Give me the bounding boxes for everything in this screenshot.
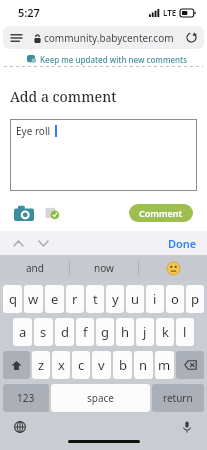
button[interactable]: n bbox=[134, 351, 153, 379]
button[interactable] bbox=[139, 255, 207, 281]
staticText: t bbox=[93, 290, 98, 308]
button[interactable]: s bbox=[34, 318, 53, 346]
button[interactable]: Shift bbox=[3, 351, 30, 379]
button[interactable]: x bbox=[52, 351, 70, 379]
staticText: c bbox=[78, 356, 85, 374]
button[interactable]: Comment bbox=[129, 204, 193, 222]
button[interactable]: e bbox=[45, 285, 64, 313]
button[interactable]: Change keyboard bbox=[11, 418, 29, 436]
button[interactable]: Attach file bbox=[44, 205, 60, 221]
staticText: g bbox=[101, 323, 109, 341]
button[interactable]: Dictate bbox=[178, 418, 196, 436]
button[interactable]: z bbox=[32, 351, 50, 379]
button[interactable]: c bbox=[72, 351, 90, 379]
button[interactable]: a bbox=[13, 318, 32, 346]
button[interactable]: w bbox=[24, 285, 43, 313]
staticText: f bbox=[83, 323, 88, 341]
staticText: e bbox=[51, 290, 59, 308]
button[interactable]: Menu bbox=[3, 26, 29, 49]
staticText: a bbox=[19, 323, 27, 341]
staticText: now bbox=[94, 261, 114, 275]
button[interactable]: return bbox=[152, 384, 204, 412]
staticText: and bbox=[26, 261, 44, 275]
staticText: 5:27 bbox=[18, 5, 40, 20]
staticText: y bbox=[112, 290, 119, 308]
staticText: u bbox=[131, 290, 140, 308]
button[interactable]: y bbox=[106, 285, 124, 313]
button[interactable]: Backspace bbox=[176, 351, 204, 379]
staticText: return bbox=[163, 391, 193, 405]
button[interactable]: h bbox=[116, 318, 134, 346]
button[interactable]: l bbox=[176, 318, 194, 346]
staticText: k bbox=[162, 323, 169, 341]
staticText: 123 bbox=[17, 391, 35, 405]
button[interactable]: 123 bbox=[3, 384, 49, 412]
staticText: r bbox=[72, 290, 78, 308]
button[interactable]: r bbox=[66, 285, 84, 313]
staticText: Done bbox=[168, 236, 197, 251]
staticText: p bbox=[191, 290, 199, 308]
button[interactable]: m bbox=[155, 351, 174, 379]
button[interactable]: and bbox=[0, 255, 69, 281]
staticText: j bbox=[143, 323, 147, 341]
staticText: w bbox=[28, 290, 39, 308]
staticText: q bbox=[9, 290, 17, 308]
staticText: z bbox=[38, 356, 45, 374]
button[interactable]: Reload bbox=[178, 26, 204, 49]
button[interactable]: d bbox=[55, 318, 74, 346]
staticText: l bbox=[183, 323, 187, 341]
staticText: h bbox=[121, 323, 130, 341]
button[interactable]: Eye roll bbox=[10, 119, 197, 191]
button[interactable]: space bbox=[51, 384, 150, 412]
button[interactable]: f bbox=[76, 318, 94, 346]
staticText: i bbox=[153, 290, 157, 308]
staticText: Comment bbox=[139, 207, 183, 219]
staticText: Add a comment bbox=[10, 87, 117, 106]
button[interactable]: Done bbox=[158, 232, 207, 255]
button[interactable]: Next field bbox=[34, 234, 52, 252]
staticText: s bbox=[40, 323, 47, 341]
staticText: v bbox=[98, 356, 105, 374]
button[interactable]: u bbox=[126, 285, 144, 313]
staticText: m bbox=[158, 356, 171, 374]
staticText: community.babycenter.com bbox=[44, 31, 174, 45]
button[interactable]: g bbox=[96, 318, 114, 346]
staticText: LTE bbox=[163, 7, 177, 18]
button[interactable]: Previous field bbox=[9, 234, 27, 252]
staticText: x bbox=[58, 356, 65, 374]
staticText: Eye roll bbox=[16, 124, 51, 138]
button[interactable]: p bbox=[186, 285, 204, 313]
staticText: n bbox=[139, 356, 148, 374]
button[interactable]: i bbox=[146, 285, 164, 313]
button[interactable]: v bbox=[92, 351, 111, 379]
button[interactable]: j bbox=[136, 318, 154, 346]
staticText: space bbox=[87, 391, 114, 405]
button[interactable]: t bbox=[86, 285, 104, 313]
button[interactable]: Add photo bbox=[14, 205, 34, 221]
button[interactable]: o bbox=[166, 285, 184, 313]
button[interactable]: q bbox=[3, 285, 22, 313]
staticText: Keep me updated with new comments bbox=[40, 54, 188, 65]
staticText: b bbox=[119, 356, 127, 374]
button[interactable]: k bbox=[156, 318, 174, 346]
staticText: o bbox=[171, 290, 179, 308]
button[interactable]: now bbox=[70, 255, 138, 281]
staticText: d bbox=[61, 323, 69, 341]
button[interactable]: b bbox=[113, 351, 132, 379]
